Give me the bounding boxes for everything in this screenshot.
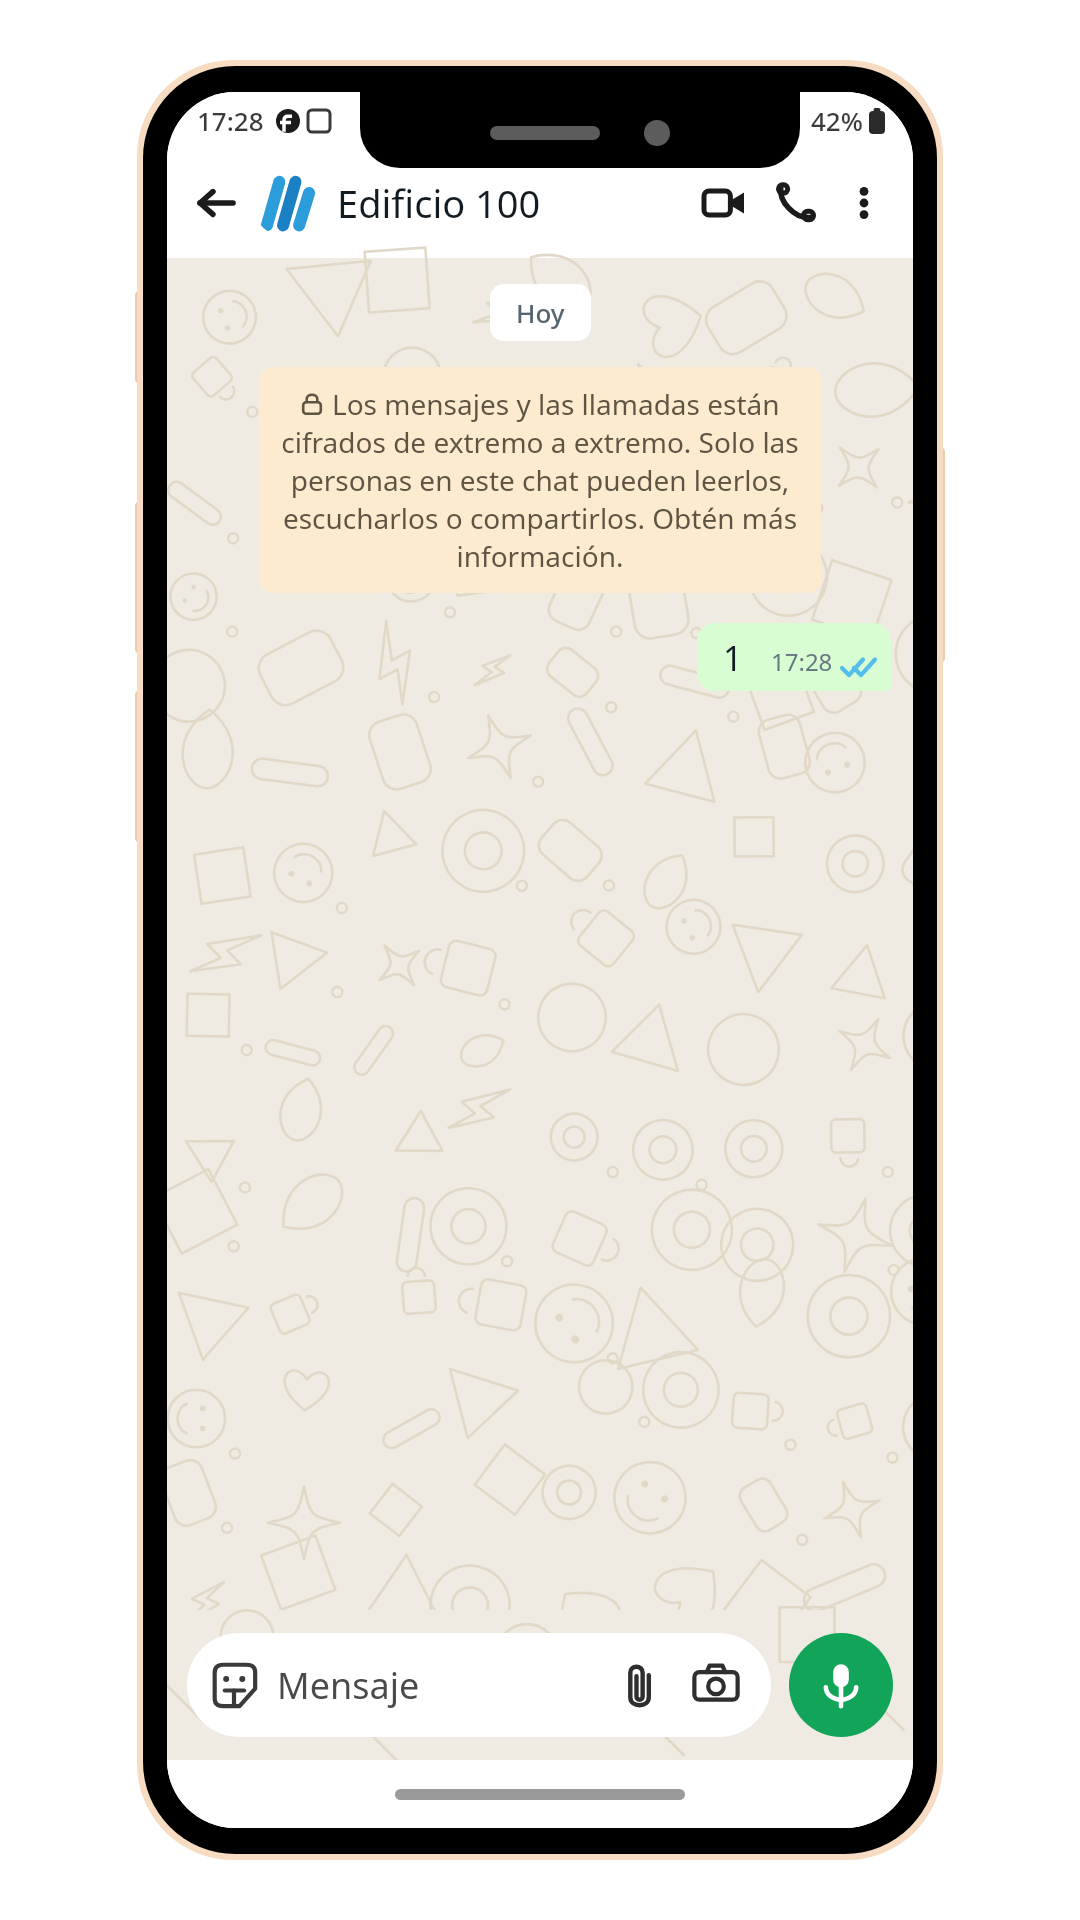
staticText: 1 <box>723 635 743 681</box>
staticText: 42% <box>811 103 863 138</box>
button[interactable]: 1 <box>697 623 891 691</box>
staticText: 17:28 <box>197 103 264 138</box>
staticText: Hoy <box>516 295 565 330</box>
button[interactable]: Mensaje <box>187 1633 771 1737</box>
button[interactable]: Los mensajes y las llamadas están <box>259 367 821 593</box>
staticText: 17:28 <box>771 645 833 678</box>
staticText: Mensaje <box>277 1661 609 1710</box>
button[interactable]: Edificio 100 <box>337 148 691 258</box>
button[interactable]: Attach <box>609 1654 671 1716</box>
staticText: cifrados de extremo a extremo. Solo las … <box>281 423 799 575</box>
staticText: Edificio 100 <box>337 177 541 229</box>
button[interactable]: Group photo <box>253 168 323 238</box>
staticText: Los mensajes y las llamadas están <box>332 385 780 423</box>
button[interactable]: More options <box>833 172 895 234</box>
button[interactable]: Voice call <box>763 170 829 236</box>
button[interactable]: Back <box>185 172 247 234</box>
button[interactable]: Camera <box>685 1654 747 1716</box>
button[interactable]: Video call <box>691 170 757 236</box>
button[interactable]: Voice message <box>789 1633 893 1737</box>
button[interactable]: Hoy <box>490 284 591 341</box>
